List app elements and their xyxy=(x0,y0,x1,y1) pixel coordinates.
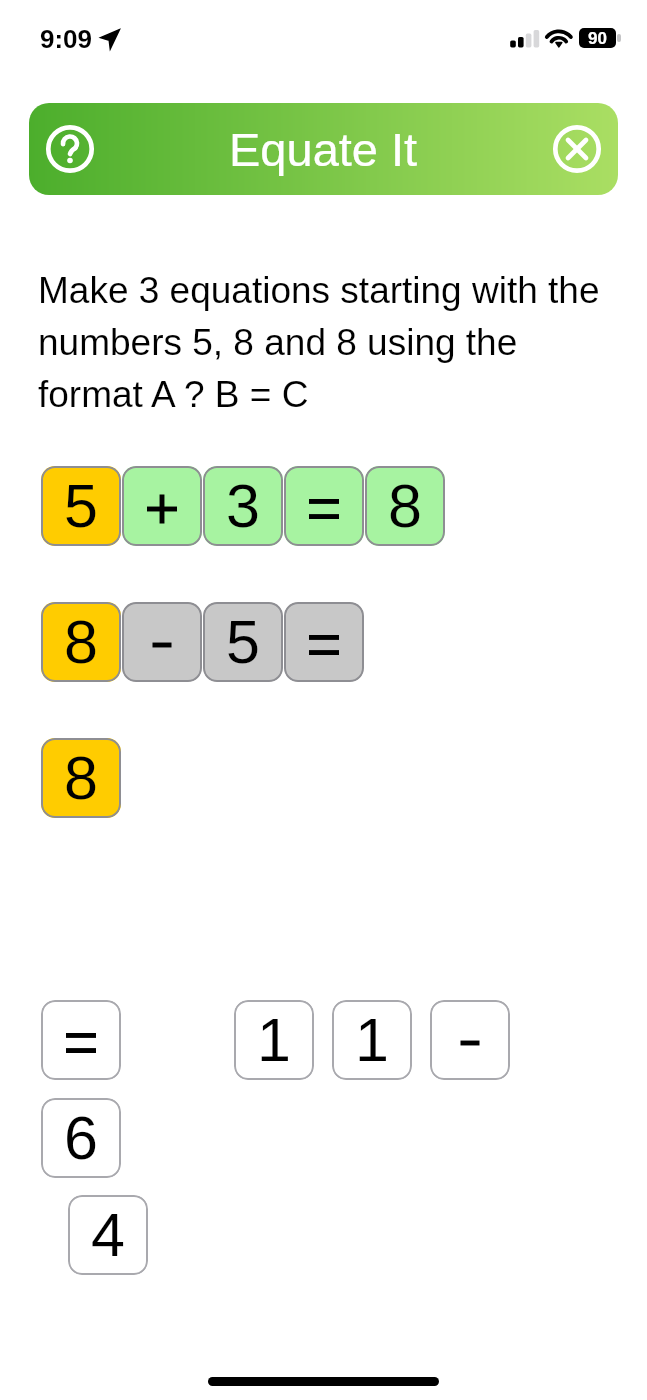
button[interactable]: 8 xyxy=(41,738,121,818)
button[interactable] xyxy=(122,602,202,682)
button[interactable]: Close xyxy=(551,123,603,175)
staticText: 8 xyxy=(64,608,98,676)
button[interactable]: 5 xyxy=(41,466,121,546)
button[interactable] xyxy=(430,1000,510,1080)
staticText: 90 xyxy=(588,29,607,48)
button[interactable]: 1 xyxy=(332,1000,412,1080)
button[interactable] xyxy=(284,602,364,682)
button[interactable] xyxy=(122,466,202,546)
button[interactable]: 6 xyxy=(41,1098,121,1178)
button[interactable]: 8 xyxy=(41,602,121,682)
staticText: 3 xyxy=(226,472,260,540)
button[interactable]: 3 xyxy=(203,466,283,546)
button[interactable]: 5 xyxy=(203,602,283,682)
staticText: 5 xyxy=(64,472,98,540)
button[interactable]: Help xyxy=(44,123,96,175)
button[interactable] xyxy=(284,466,364,546)
staticText: 6 xyxy=(64,1104,98,1172)
staticText: 8 xyxy=(388,472,422,540)
button[interactable] xyxy=(41,1000,121,1080)
staticText: 1 xyxy=(355,1006,389,1074)
staticText: Equate It xyxy=(229,123,418,176)
staticText: Make 3 equations starting with the numbe… xyxy=(38,270,618,415)
staticText: 4 xyxy=(91,1201,125,1269)
button[interactable]: 4 xyxy=(68,1195,148,1275)
staticText: 1 xyxy=(257,1006,291,1074)
button[interactable]: 8 xyxy=(365,466,445,546)
staticText: 9:09 xyxy=(40,24,93,53)
staticText: 8 xyxy=(64,744,98,812)
staticText: 5 xyxy=(226,608,260,676)
button[interactable]: 1 xyxy=(234,1000,314,1080)
